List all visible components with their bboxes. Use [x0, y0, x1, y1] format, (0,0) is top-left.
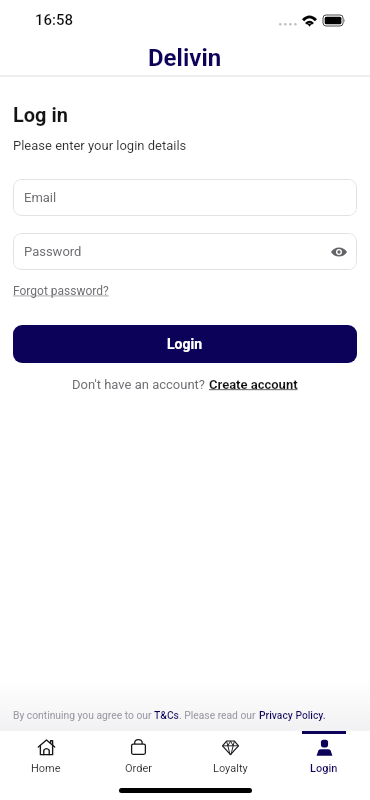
staticText: . Please read our — [179, 709, 259, 721]
staticText: Log in — [13, 103, 69, 126]
staticText: By continuing you agree to our — [13, 709, 154, 721]
button[interactable]: Home — [0, 731, 92, 775]
button[interactable]: Login — [277, 731, 370, 775]
button[interactable]: Login — [13, 325, 357, 363]
staticText: Order — [125, 762, 152, 775]
button[interactable]: Order — [92, 731, 184, 775]
button[interactable]: Forgot password? — [13, 284, 109, 298]
button[interactable]: Loyalty — [184, 731, 277, 775]
staticText: Please enter your login details — [13, 138, 187, 153]
staticText: Home — [31, 762, 61, 775]
staticText: Password — [24, 244, 82, 259]
button[interactable]: T&Cs — [154, 709, 179, 721]
button[interactable]: Privacy Policy. — [259, 709, 326, 721]
button[interactable]: Password — [13, 233, 357, 270]
staticText: Email — [24, 190, 57, 205]
staticText: Login — [310, 762, 338, 775]
button[interactable]: Email — [13, 179, 357, 216]
staticText: 16:58 — [35, 11, 74, 29]
staticText: Login — [167, 336, 203, 352]
staticText: Don't have an account? — [72, 377, 209, 392]
staticText: Delivin — [148, 44, 222, 72]
button[interactable]: Create account — [209, 377, 298, 392]
staticText: Loyalty — [213, 762, 248, 775]
button[interactable]: Show password — [329, 242, 349, 262]
